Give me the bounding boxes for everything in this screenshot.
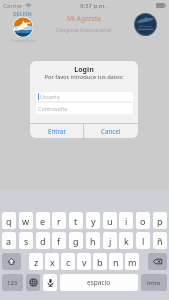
button[interactable]: Shift bbox=[2, 253, 21, 270]
staticText: x bbox=[50, 256, 55, 268]
staticText: Cancel bbox=[101, 127, 121, 135]
staticText: Usuario bbox=[40, 93, 60, 100]
button[interactable]: f bbox=[52, 232, 66, 249]
staticText: Congreso Internacional bbox=[56, 27, 112, 34]
button[interactable]: l bbox=[136, 232, 150, 249]
staticText: f bbox=[57, 235, 61, 247]
staticText: y bbox=[91, 215, 96, 227]
staticText: d bbox=[40, 235, 46, 247]
staticText: u bbox=[107, 215, 113, 227]
button[interactable]: h bbox=[86, 232, 100, 249]
staticText: q bbox=[6, 215, 12, 227]
button[interactable]: v bbox=[77, 253, 91, 270]
staticText: j bbox=[109, 235, 112, 247]
staticText: Por favor, introduce tus datos: bbox=[30, 73, 138, 81]
staticText: s bbox=[24, 235, 29, 247]
button[interactable]: b bbox=[93, 253, 107, 270]
button[interactable]: c bbox=[61, 253, 75, 270]
button[interactable]: j bbox=[103, 232, 117, 249]
staticText: r bbox=[57, 215, 61, 227]
button[interactable]: y bbox=[86, 212, 100, 229]
button[interactable]: u bbox=[103, 212, 117, 229]
staticText: Contraseña bbox=[38, 105, 68, 112]
button[interactable]: Dictation bbox=[43, 274, 57, 291]
button[interactable]: intro bbox=[141, 274, 167, 291]
staticText: v bbox=[82, 256, 87, 268]
button[interactable]: q bbox=[2, 212, 16, 229]
staticText: intro bbox=[147, 279, 161, 287]
staticText: Entrar bbox=[48, 127, 66, 135]
button[interactable]: Contraseña bbox=[36, 103, 133, 114]
staticText: b bbox=[97, 256, 103, 268]
staticText: h bbox=[90, 235, 96, 247]
button[interactable]: d bbox=[36, 232, 50, 249]
staticText: e bbox=[40, 215, 46, 227]
staticText: a bbox=[6, 235, 12, 247]
staticText: i bbox=[125, 215, 128, 227]
staticText: p bbox=[157, 215, 163, 227]
staticText: c bbox=[66, 256, 71, 268]
staticText: Mi Agenda bbox=[67, 14, 101, 23]
button[interactable]: k bbox=[119, 232, 133, 249]
staticText: espacio bbox=[87, 278, 111, 287]
staticText: n bbox=[113, 256, 119, 268]
staticText: g bbox=[73, 235, 79, 247]
button[interactable]: Entrar bbox=[30, 123, 83, 138]
staticText: DELFIN bbox=[13, 10, 32, 17]
staticText: 9:37 p.m. bbox=[80, 2, 107, 10]
staticText: ñ bbox=[157, 235, 163, 247]
staticText: Login bbox=[30, 65, 138, 75]
button[interactable]: espacio bbox=[60, 274, 138, 291]
staticText: m bbox=[128, 256, 137, 268]
button[interactable]: n bbox=[109, 253, 123, 270]
button[interactable]: a bbox=[2, 232, 16, 249]
staticText: t bbox=[74, 215, 78, 227]
button[interactable]: e bbox=[36, 212, 50, 229]
staticText: z bbox=[34, 256, 39, 268]
button[interactable]: Cancel bbox=[84, 123, 138, 138]
button[interactable]: s bbox=[19, 232, 33, 249]
staticText: 123 bbox=[7, 279, 18, 287]
staticText: l bbox=[142, 235, 145, 247]
staticText: w bbox=[22, 215, 30, 227]
staticText: Carrier bbox=[3, 2, 23, 10]
staticText: k bbox=[124, 235, 129, 247]
button[interactable]: z bbox=[29, 253, 43, 270]
button[interactable]: p bbox=[153, 212, 167, 229]
button[interactable]: t bbox=[69, 212, 83, 229]
button[interactable]: ñ bbox=[153, 232, 167, 249]
button[interactable]: r bbox=[52, 212, 66, 229]
staticText: Programa Delfin bbox=[11, 39, 36, 43]
button[interactable]: Usuario bbox=[36, 92, 133, 101]
button[interactable]: i bbox=[119, 212, 133, 229]
button[interactable]: w bbox=[19, 212, 33, 229]
staticText: o bbox=[140, 215, 146, 227]
button[interactable]: x bbox=[45, 253, 59, 270]
button[interactable]: g bbox=[69, 232, 83, 249]
button[interactable]: o bbox=[136, 212, 150, 229]
button[interactable]: 123 bbox=[2, 274, 23, 291]
button[interactable]: Backspace bbox=[148, 253, 167, 270]
button[interactable]: Change keyboard bbox=[26, 274, 40, 291]
button[interactable]: m bbox=[125, 253, 139, 270]
